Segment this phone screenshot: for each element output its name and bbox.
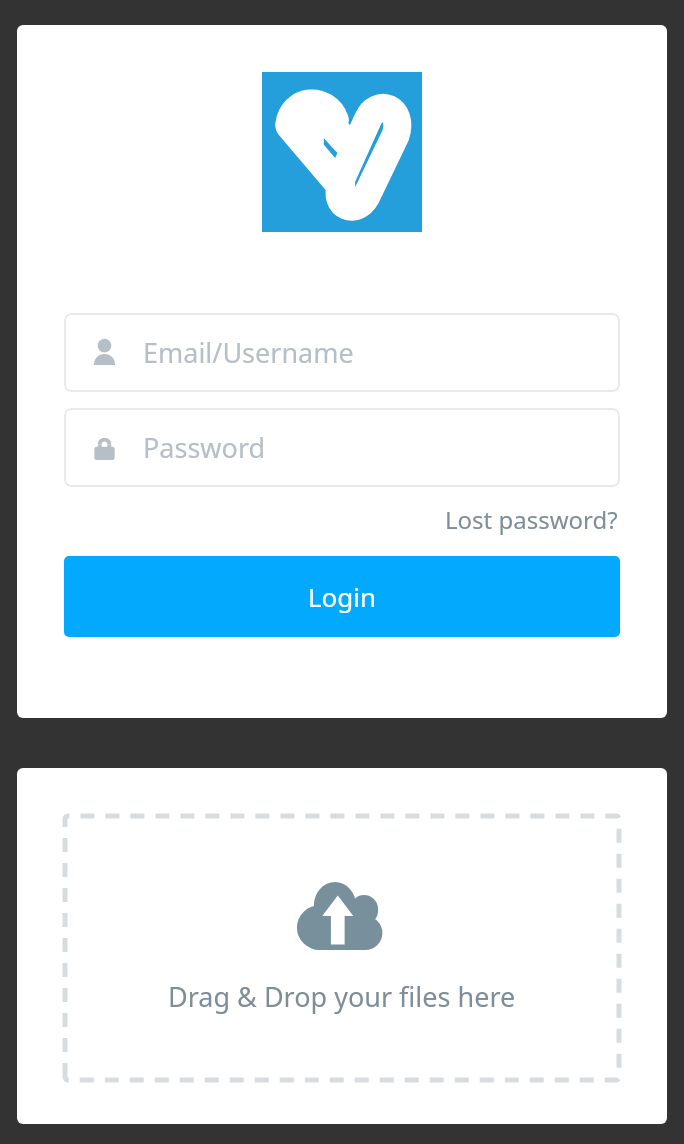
button[interactable]: Login <box>64 556 620 637</box>
button[interactable]: Drag and drop your files here to upload <box>65 816 619 1080</box>
button[interactable]: Password <box>64 408 620 487</box>
staticText: Email/Username <box>143 334 354 371</box>
staticText: Password <box>143 429 266 466</box>
staticText: Lost password? <box>445 503 618 536</box>
staticText: Login <box>308 579 377 614</box>
staticText: Drag & Drop your files here <box>168 978 516 1015</box>
button[interactable]: Lost password? <box>443 499 620 540</box>
button[interactable]: Email or username <box>64 313 620 392</box>
